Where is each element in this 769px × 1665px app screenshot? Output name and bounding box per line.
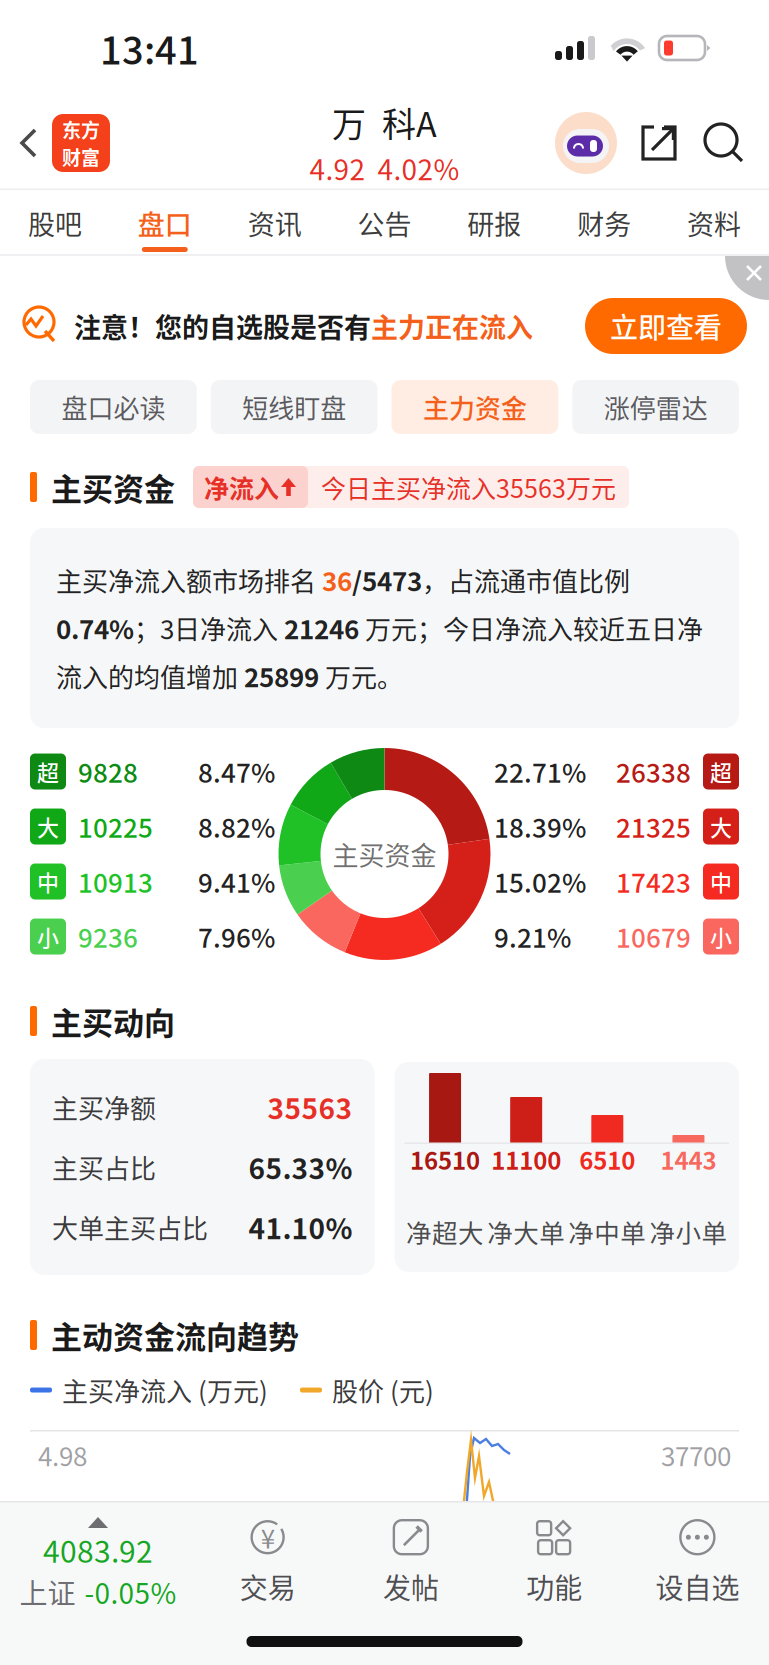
staticText: 涨停雷达 [604, 388, 708, 426]
staticText: 净小单 [649, 1213, 727, 1250]
staticText: 盘口必读 [61, 388, 165, 426]
button[interactable]: 主力资金 [391, 380, 558, 434]
staticText: 主买占比 [52, 1148, 156, 1186]
staticText: 财务 [577, 203, 631, 243]
staticText: 研报 [467, 203, 521, 243]
staticText: 大单主买占比 [52, 1208, 208, 1246]
staticText: 16510 [410, 1142, 480, 1177]
staticText: 9.21% [494, 918, 571, 955]
staticText: 9.41% [198, 863, 275, 900]
staticText: 4.98 [38, 1436, 87, 1474]
button[interactable]: 研报 [439, 190, 549, 256]
staticText: 东方 [62, 115, 100, 143]
staticText: 主买净额 [52, 1088, 156, 1126]
staticText: 净中单 [568, 1213, 646, 1250]
staticText: ，占流通市值比例 [422, 561, 630, 599]
staticText: 资料 [687, 203, 741, 243]
staticText: 21325 [616, 808, 691, 845]
staticText: 功能 [526, 1566, 582, 1607]
button[interactable]: 短线盯盘 [211, 380, 378, 434]
staticText: 大 [710, 811, 732, 842]
button[interactable]: 返回 [0, 96, 118, 190]
staticText: 资讯 [248, 203, 302, 243]
button[interactable]: 设自选 [626, 1518, 769, 1607]
staticText: 0.74% [56, 609, 134, 647]
staticText: 上证 [19, 1571, 75, 1612]
staticText: 8.82% [198, 808, 275, 845]
staticText: 主买动向 [51, 999, 175, 1043]
button[interactable]: 资料 [659, 190, 769, 256]
staticText: 中 [710, 866, 732, 897]
staticText: 短线盯盘 [242, 388, 346, 426]
staticText: 10679 [616, 918, 691, 955]
staticText: 您的自选股是否有 [155, 306, 371, 346]
staticText: 18.39% [494, 808, 586, 845]
staticText: 财富 [62, 143, 100, 170]
staticText: 26338 [616, 753, 691, 790]
staticText: 流入的均值增加 [56, 657, 244, 695]
button[interactable]: 发帖 [339, 1518, 482, 1607]
staticText: 万元。 [319, 657, 403, 695]
staticText: 22.71% [494, 753, 586, 790]
staticText: 超 [37, 756, 59, 787]
button[interactable]: 股吧 [0, 190, 110, 256]
staticText: 7.96% [198, 918, 275, 955]
staticText: 超 [710, 756, 732, 787]
button[interactable]: 涨停雷达 [572, 380, 739, 434]
button[interactable]: 关闭 [725, 256, 769, 300]
staticText: 万 科A [332, 98, 437, 147]
staticText: 35563 [267, 1087, 352, 1127]
staticText: 主买净流入额市场排名 [56, 561, 322, 599]
staticText: 4083.92 [43, 1528, 153, 1571]
staticText: 今日主买净流入35563万元 [321, 469, 616, 505]
staticText: 17423 [616, 863, 691, 900]
staticText: 4.92 4.02% [309, 148, 459, 188]
staticText: 1443 [660, 1142, 716, 1177]
staticText: 主买资金 [51, 465, 175, 509]
staticText: 发帖 [383, 1566, 439, 1607]
staticText: 11100 [491, 1142, 561, 1177]
staticText: /5473 [352, 561, 422, 599]
button[interactable]: 功能 [482, 1518, 626, 1607]
staticText: 41.10% [248, 1207, 352, 1247]
staticText: 9828 [78, 753, 138, 790]
staticText: 股吧 [28, 203, 82, 243]
staticText: 主动资金流向趋势 [51, 1313, 299, 1357]
staticText: 37700 [661, 1436, 731, 1474]
button[interactable]: 分享 [637, 121, 681, 165]
staticText: 股价 (元) [332, 1371, 434, 1409]
button[interactable]: AI 助手 [555, 112, 617, 174]
button[interactable]: 资讯 [220, 190, 330, 256]
staticText: 21246 [284, 609, 359, 647]
staticText: 净超大 [406, 1213, 484, 1250]
staticText: 6510 [579, 1142, 635, 1177]
button[interactable]: 财务 [549, 190, 659, 256]
button[interactable]: 公告 [330, 190, 439, 256]
staticText: 交易 [240, 1566, 296, 1607]
staticText: 净大单 [487, 1213, 565, 1250]
staticText: 主力资金 [423, 388, 527, 426]
staticText: 25899 [244, 657, 319, 695]
staticText: 主买净流入 (万元) [62, 1371, 268, 1409]
staticText: -0.05% [84, 1571, 176, 1612]
staticText: 8.47% [198, 753, 275, 790]
staticText: 小 [37, 921, 59, 952]
staticText: 盘口 [138, 203, 192, 243]
button[interactable]: 盘口 [110, 190, 220, 256]
staticText: 10225 [78, 808, 153, 845]
staticText: 公告 [357, 203, 411, 243]
button[interactable]: 4083.92 [0, 1513, 196, 1612]
button[interactable]: ¥ [196, 1518, 339, 1607]
staticText: 主买资金 [332, 835, 436, 873]
staticText: 15.02% [494, 863, 586, 900]
button[interactable]: 搜索 [701, 120, 747, 166]
staticText: 设自选 [655, 1566, 739, 1607]
staticText: 万元；今日净流入较近五日净 [359, 609, 703, 647]
staticText: 小 [710, 921, 732, 952]
staticText: 净流入 [204, 469, 279, 505]
button[interactable]: 盘口必读 [30, 380, 197, 434]
staticText: ¥ [261, 1518, 275, 1556]
staticText: 中 [37, 866, 59, 897]
button[interactable]: 注意！ [0, 278, 769, 374]
staticText: 大 [37, 811, 59, 842]
